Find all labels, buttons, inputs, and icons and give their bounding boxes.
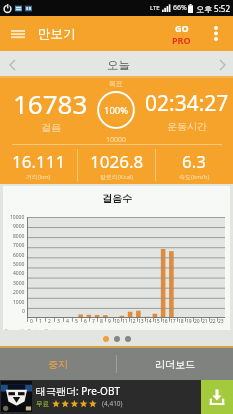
staticText: 리더보드 — [155, 358, 195, 371]
staticText: 12 — [130, 318, 136, 325]
staticText: 100% — [104, 104, 129, 117]
staticText: 19 — [186, 318, 192, 325]
staticText: 10000 — [10, 214, 25, 221]
staticText: 목표 — [109, 79, 123, 88]
button[interactable]: 중지 — [0, 348, 116, 380]
button[interactable]: Previous day — [0, 51, 25, 78]
button[interactable]: Menu — [0, 16, 36, 51]
button[interactable]: 태극팬더: Pre-OBT — [0, 380, 233, 414]
staticText: 4000 — [13, 270, 25, 277]
staticText: GO — [175, 22, 189, 34]
staticText: 6000 — [13, 252, 25, 259]
staticText: 66% — [173, 3, 187, 13]
button[interactable]: Install — [201, 380, 233, 414]
button[interactable]: GO — [170, 22, 193, 46]
staticText: 11 — [122, 318, 128, 325]
staticText: 18 — [178, 318, 184, 325]
staticText: 오후 5:52 — [196, 3, 230, 14]
staticText: 10 — [114, 318, 120, 325]
staticText: 23 — [218, 318, 224, 325]
staticText: PRO — [172, 34, 191, 46]
staticText: 15 — [154, 318, 160, 325]
staticText: 16 — [162, 318, 168, 325]
button[interactable]: 리더보드 — [117, 348, 233, 380]
staticText: LTE — [150, 4, 160, 12]
staticText: 1 — [39, 318, 42, 325]
staticText: 9000 — [13, 223, 25, 230]
staticText: 8000 — [13, 233, 25, 240]
staticText: 칼로리(Kcal) — [100, 173, 134, 181]
staticText: 3 — [57, 318, 60, 325]
staticText: 무료 — [36, 400, 49, 408]
staticText: 9 — [108, 318, 111, 325]
staticText: 태극팬더: Pre-OBT — [36, 384, 120, 398]
button[interactable]: Next day — [211, 51, 233, 78]
staticText: 2 — [48, 318, 51, 325]
staticText: 8 — [100, 318, 103, 325]
staticText: 0 — [30, 318, 33, 325]
staticText: 중지 — [48, 358, 68, 371]
staticText: 1026.8 — [90, 150, 144, 173]
staticText: 오늘 — [107, 58, 130, 72]
staticText: 거리(km) — [26, 173, 51, 181]
staticText: 3000 — [13, 280, 25, 287]
staticText: 2000 — [13, 289, 25, 296]
button[interactable]: 오늘 — [25, 51, 211, 78]
staticText: 10000 — [106, 135, 127, 145]
staticText: Powered by BusinessChart — [5, 328, 55, 330]
staticText: 걸음수 — [102, 192, 132, 205]
staticText: 22 — [210, 318, 216, 325]
staticText: 운동시간 — [167, 120, 207, 133]
staticText: 5000 — [13, 261, 25, 268]
staticText: 02:34:27 — [145, 89, 229, 118]
staticText: 6 — [84, 318, 87, 325]
staticText: 20 — [194, 318, 200, 325]
staticText: 7 — [92, 318, 95, 325]
staticText: 14 — [146, 318, 152, 325]
staticText: 17 — [170, 318, 176, 325]
staticText: 16.111 — [12, 150, 66, 173]
staticText: 걸음 — [41, 121, 61, 134]
staticText: 16783 — [13, 86, 88, 121]
staticText: (4,410) — [102, 399, 123, 408]
staticText: 5 — [75, 318, 78, 325]
staticText: 21 — [202, 318, 208, 325]
staticText: 만보기 — [38, 26, 76, 42]
button[interactable]: More options — [203, 16, 229, 51]
staticText: 6.3 — [182, 150, 207, 173]
staticText: 1000 — [13, 299, 25, 306]
staticText: 속도(km/h) — [179, 173, 210, 181]
staticText: 0 — [22, 308, 25, 315]
staticText: 4 — [66, 318, 69, 325]
staticText: 13 — [138, 318, 144, 325]
staticText: 7000 — [13, 242, 25, 249]
